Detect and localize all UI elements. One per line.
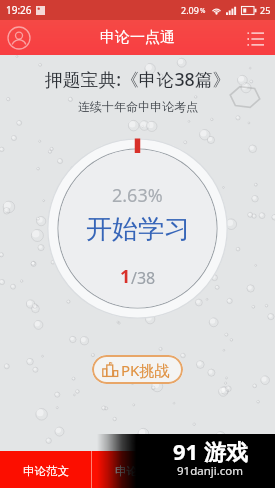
staticText: 19:26 (6, 3, 32, 17)
staticText: 申论一点通 (100, 28, 175, 47)
staticText: 押题宝典:《申论38篇》 (45, 67, 231, 91)
staticText: 连续十年命中申论考点 (78, 99, 198, 114)
staticText: PK挑战 (121, 360, 170, 380)
button[interactable]: Menu (235, 20, 275, 55)
button[interactable]: Profile (0, 20, 40, 55)
staticText: 2.09 (181, 4, 199, 16)
staticText: 2.63% (112, 183, 163, 208)
button[interactable]: 申论热点 (184, 451, 275, 488)
staticText: % (200, 6, 206, 15)
staticText: 申论真题 (115, 464, 161, 478)
button[interactable]: PK挑战 (92, 355, 183, 384)
button[interactable]: 申论范文 (0, 451, 91, 488)
staticText: 申论范文 (23, 464, 69, 478)
button[interactable]: 开始学习 (86, 213, 190, 246)
staticText: 申论热点 (207, 464, 253, 478)
staticText: 1 (120, 264, 131, 289)
button[interactable]: 申论真题 (92, 451, 183, 488)
staticText: 91 游戏 (173, 436, 248, 466)
staticText: 25 (260, 4, 271, 16)
staticText: /38 (131, 267, 156, 289)
staticText: 91danji.com (177, 463, 244, 479)
